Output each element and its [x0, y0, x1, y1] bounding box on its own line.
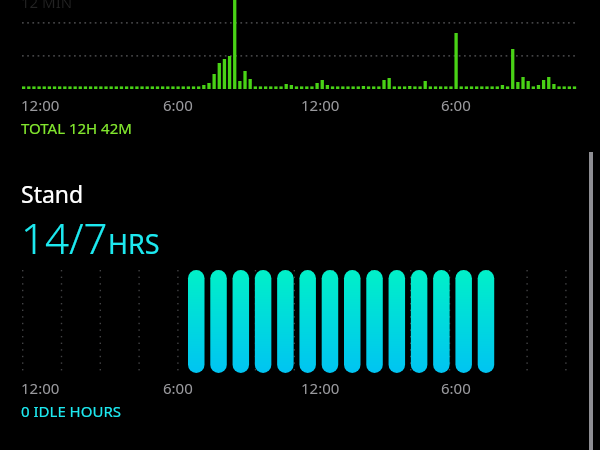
staticText: 6:00 [441, 378, 471, 398]
staticText: HRS [108, 225, 160, 262]
staticText: 6:00 [163, 378, 193, 398]
button[interactable]: Stand [21, 178, 160, 266]
staticText: 0 IDLE HOURS [21, 401, 121, 421]
staticText: 12:00 [21, 378, 60, 398]
staticText: 6:00 [441, 95, 471, 115]
staticText: 12:00 [301, 95, 340, 115]
staticText: 12 MIN [21, 0, 73, 12]
staticText: 6:00 [163, 95, 193, 115]
staticText: TOTAL 12H 42M [21, 118, 132, 138]
staticText: Stand [21, 178, 84, 209]
staticText: 12:00 [21, 95, 60, 115]
staticText: 12:00 [301, 378, 340, 398]
staticText: 14/7 [21, 209, 108, 266]
